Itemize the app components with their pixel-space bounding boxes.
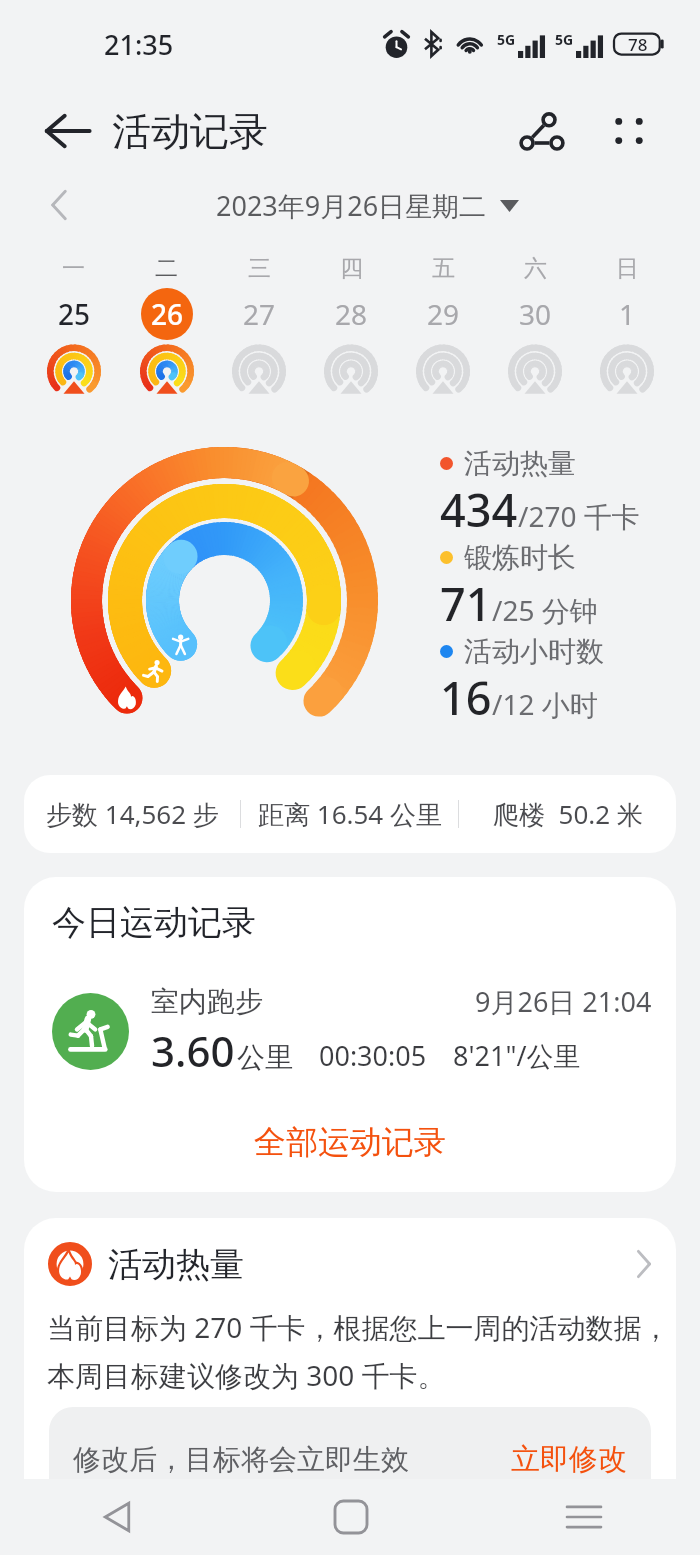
button[interactable]: 全部运动记录 — [24, 1092, 676, 1192]
staticText: 三 — [248, 254, 271, 283]
staticText: 一 — [62, 254, 85, 283]
staticText: 四 — [340, 254, 363, 283]
staticText: 29 — [427, 295, 460, 333]
staticText: 8'21"/公里 — [453, 1037, 581, 1074]
staticText: 16 — [440, 667, 492, 728]
staticText: /270 千卡 — [518, 497, 640, 535]
staticText: 2023年9月26日星期二 — [216, 187, 487, 224]
button[interactable]: 六 — [489, 236, 581, 392]
staticText: 室内跑步 — [151, 984, 263, 1019]
staticText: 全部运动记录 — [254, 1122, 446, 1162]
button[interactable]: Previous day — [36, 182, 82, 228]
button[interactable]: 2023年9月26日星期二 — [208, 183, 527, 228]
staticText: 5G — [497, 30, 516, 49]
staticText: 立即修改 — [511, 1441, 627, 1478]
staticText: 日 — [616, 254, 639, 283]
staticText: 71 — [440, 573, 492, 634]
staticText: 活动热量 — [464, 446, 576, 481]
button[interactable]: 日 — [581, 236, 673, 392]
button[interactable]: 二 — [120, 236, 213, 392]
staticText: 26 — [151, 295, 184, 333]
button[interactable]: 活动热量 — [24, 1218, 676, 1286]
staticText: 00:30:05 — [319, 1037, 427, 1074]
staticText: 活动热量 — [108, 1243, 244, 1286]
staticText: 21:35 — [104, 26, 174, 63]
staticText: 活动记录 — [112, 107, 268, 156]
staticText: 当前目标为 270 千卡，根据您上一周的活动数据， 本周目标建议修改为 300 … — [47, 1308, 670, 1394]
button[interactable]: 三 — [213, 236, 305, 392]
staticText: 今日运动记录 — [52, 901, 256, 944]
staticText: 27 — [243, 295, 276, 333]
staticText: 434 — [440, 479, 518, 540]
staticText: 二 — [155, 254, 178, 283]
staticText: 25 — [58, 295, 91, 333]
staticText: 3.60 — [151, 1022, 235, 1079]
button[interactable]: 五 — [397, 236, 489, 392]
staticText: /12 小时 — [492, 685, 598, 723]
staticText: 1 — [619, 295, 636, 333]
button[interactable]: 步数 14,562 步 — [24, 775, 676, 853]
staticText: 步数 14,562 步 — [46, 796, 219, 832]
staticText: 活动小时数 — [464, 634, 604, 669]
staticText: 爬楼 50.2 米 — [493, 796, 643, 832]
staticText: 锻炼时长 — [464, 540, 576, 575]
staticText: 5G — [555, 30, 574, 49]
staticText: 78 — [628, 33, 648, 56]
button[interactable]: Back — [38, 102, 96, 160]
staticText: 修改后，目标将会立即生效 — [73, 1442, 409, 1477]
staticText: 距离 16.54 公里 — [258, 796, 442, 832]
button[interactable]: Share — [511, 100, 573, 162]
staticText: 公里 — [237, 1040, 293, 1075]
button[interactable]: Back — [0, 1479, 234, 1555]
staticText: 30 — [519, 295, 552, 333]
staticText: /25 分钟 — [492, 591, 598, 629]
button[interactable]: More options — [601, 103, 657, 159]
button[interactable]: 四 — [305, 236, 397, 392]
button[interactable]: 室内跑步 — [24, 983, 676, 1079]
staticText: 五 — [432, 254, 455, 283]
staticText: 9月26日 21:04 — [475, 983, 652, 1020]
button[interactable]: Home — [234, 1479, 467, 1555]
staticText: 28 — [335, 295, 368, 333]
button[interactable]: Recent apps — [467, 1479, 700, 1555]
button[interactable]: 一 — [27, 236, 120, 392]
staticText: 六 — [524, 254, 547, 283]
button[interactable]: 修改后，目标将会立即生效 — [49, 1407, 651, 1511]
